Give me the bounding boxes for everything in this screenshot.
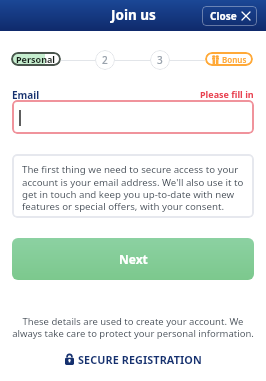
staticText: 2 [102, 53, 108, 67]
staticText: Join us [111, 6, 156, 24]
button[interactable]: Close [202, 6, 257, 26]
staticText: The first thing we need to secure access… [22, 163, 244, 213]
staticText: These details are used to create your ac… [9, 315, 257, 340]
staticText: Next [119, 251, 148, 267]
button[interactable]: Next [12, 238, 254, 280]
staticText: Email [12, 88, 40, 102]
staticText: 3 [157, 53, 163, 67]
button[interactable]: 3 [150, 50, 170, 70]
button[interactable]: Bonus [205, 52, 253, 66]
staticText: SECURE REGISTRATION [78, 352, 202, 367]
button[interactable]: Personal [11, 52, 61, 66]
staticText: Personal [16, 53, 56, 65]
staticText: Please fill in [200, 88, 254, 100]
staticText: Close [210, 9, 237, 23]
button[interactable] [12, 100, 254, 134]
button[interactable]: 2 [95, 50, 115, 70]
staticText: Bonus [222, 54, 247, 65]
other: Secure [65, 354, 74, 365]
